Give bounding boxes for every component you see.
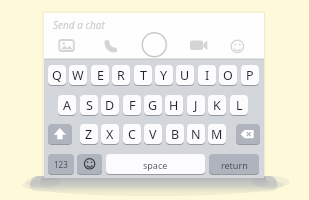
button[interactable]: O	[219, 65, 237, 86]
button[interactable]: H	[165, 95, 183, 116]
button[interactable]: L	[230, 95, 248, 116]
staticText: Send a chat	[53, 18, 105, 32]
button[interactable]: N	[187, 124, 205, 145]
staticText: B	[171, 126, 180, 143]
staticText: X	[106, 126, 114, 143]
button[interactable]: P	[241, 65, 259, 86]
button[interactable]: return	[209, 154, 259, 175]
button[interactable]	[77, 154, 102, 175]
button[interactable]: E	[91, 65, 109, 86]
button[interactable]: B	[166, 124, 184, 145]
staticText: M	[211, 126, 223, 143]
button[interactable]: F	[123, 95, 141, 116]
staticText: T	[140, 67, 147, 84]
button[interactable]: S	[80, 95, 98, 116]
staticText: U	[180, 67, 190, 84]
staticText: K	[213, 97, 221, 114]
button[interactable]: T	[134, 65, 152, 86]
button[interactable]: R	[112, 65, 130, 86]
button[interactable]: X	[101, 124, 119, 145]
button[interactable]: space	[106, 154, 205, 175]
button[interactable]: G	[144, 95, 162, 116]
staticText: I	[205, 67, 210, 84]
button[interactable]: 123	[48, 154, 74, 175]
staticText: H	[169, 97, 179, 114]
button[interactable]	[230, 39, 245, 54]
staticText: O	[223, 67, 233, 84]
button[interactable]	[103, 37, 119, 53]
button[interactable]: Send a chat	[53, 18, 105, 32]
button[interactable]: K	[208, 95, 226, 116]
staticText: return	[221, 159, 248, 171]
button[interactable]: I	[198, 65, 216, 86]
button[interactable]: U	[176, 65, 194, 86]
button[interactable]: J	[187, 95, 205, 116]
staticText: R	[117, 67, 125, 84]
button[interactable]: W	[69, 65, 87, 86]
button[interactable]: C	[123, 124, 141, 145]
button[interactable]	[236, 124, 260, 145]
button[interactable]: V	[144, 124, 162, 145]
staticText: Q	[52, 67, 62, 84]
staticText: Y	[160, 67, 168, 84]
staticText: P	[246, 67, 254, 84]
staticText: space	[143, 159, 168, 171]
button[interactable]: Q	[48, 65, 66, 86]
staticText: F	[129, 97, 136, 114]
button[interactable]	[188, 38, 209, 52]
button[interactable]: M	[208, 124, 226, 145]
button[interactable]	[48, 124, 72, 145]
staticText: L	[236, 97, 243, 114]
button[interactable]: A	[58, 95, 76, 116]
staticText: W	[72, 67, 84, 84]
button[interactable]	[57, 38, 76, 53]
button[interactable]: Y	[155, 65, 173, 86]
button[interactable]: Z	[80, 124, 98, 145]
staticText: G	[148, 97, 158, 114]
button[interactable]	[142, 33, 167, 58]
staticText: 123	[54, 159, 68, 170]
staticText: C	[128, 126, 136, 143]
staticText: N	[191, 126, 201, 143]
staticText: A	[63, 97, 71, 114]
staticText: Z	[85, 126, 93, 143]
staticText: V	[149, 126, 157, 143]
button[interactable]: D	[101, 95, 119, 116]
staticText: E	[97, 67, 104, 84]
staticText: D	[105, 97, 115, 114]
staticText: J	[194, 97, 198, 114]
staticText: S	[86, 97, 93, 114]
